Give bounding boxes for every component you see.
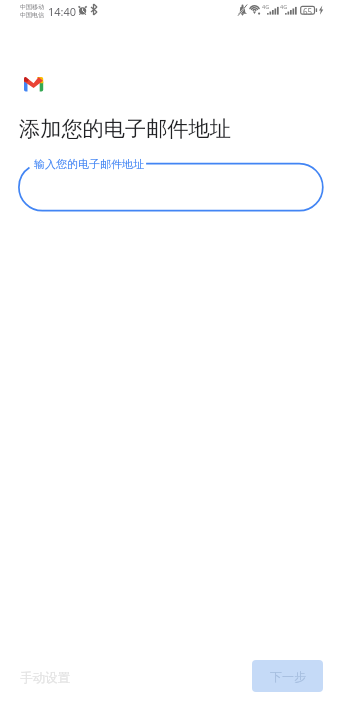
staticText: 中国电信 (20, 11, 44, 19)
staticText: 4G (280, 3, 288, 10)
button[interactable]: 输入您的电子邮件地址 (19, 164, 323, 211)
staticText: 65 (303, 6, 313, 17)
other: Bluetooth on (91, 4, 97, 15)
other: Battery 65 percent, charging (299, 4, 318, 16)
staticText: 输入您的电子邮件地址 (34, 157, 144, 171)
staticText: 14:40 (48, 4, 77, 19)
staticText: 添加您的电子邮件地址 (19, 116, 231, 143)
staticText: 中国移动 (20, 3, 44, 11)
staticText: 4G (262, 3, 270, 10)
other: Ringer muted (236, 3, 248, 16)
button[interactable]: 手动设置 (12, 662, 78, 694)
other: Alarm set (78, 4, 88, 16)
button[interactable]: 下一步 (252, 660, 323, 692)
staticText: 手动设置 (20, 670, 70, 686)
other: Gmail (24, 77, 44, 92)
staticText: 下一步 (270, 669, 306, 684)
other: Wi-Fi connected (249, 3, 262, 16)
